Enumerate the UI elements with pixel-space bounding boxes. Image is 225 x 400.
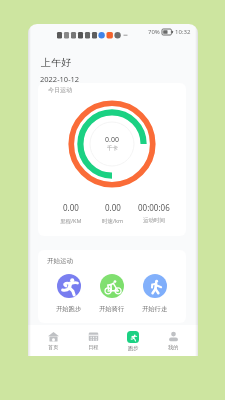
staticText: 千卡 xyxy=(107,145,118,152)
staticText: 2022-10-12 xyxy=(40,74,80,84)
staticText: 跑步 xyxy=(128,345,139,352)
staticText: 开始行走 xyxy=(142,305,168,313)
button[interactable]: 开始行走 xyxy=(133,274,176,313)
staticText: 10:32 xyxy=(175,28,191,36)
button[interactable]: 我的 xyxy=(153,325,193,356)
staticText: 我的 xyxy=(168,344,179,351)
staticText: 开始骑行 xyxy=(99,305,125,313)
staticText: 开始运动 xyxy=(47,257,73,265)
staticText: 日程 xyxy=(88,344,99,351)
staticText: 0.00 xyxy=(105,202,121,213)
staticText: 上午好 xyxy=(41,56,71,69)
button[interactable]: 日程 xyxy=(73,325,113,356)
staticText: 首页 xyxy=(48,344,59,351)
button[interactable]: 跑步 xyxy=(113,325,153,356)
staticText: 开始跑步 xyxy=(56,305,82,313)
staticText: 00:00:06 xyxy=(138,202,170,213)
button[interactable]: 开始骑行 xyxy=(90,274,133,313)
staticText: 里程/KM xyxy=(60,217,82,225)
button[interactable]: 开始跑步 xyxy=(48,274,90,313)
button[interactable]: 首页 xyxy=(33,325,73,356)
staticText: 0.00 xyxy=(105,135,119,145)
staticText: 今日运动 xyxy=(48,86,72,94)
staticText: 运动时间 xyxy=(143,217,165,224)
staticText: 0.00 xyxy=(63,202,79,213)
staticText: 时速/km xyxy=(102,217,124,225)
staticText: 70% xyxy=(148,28,160,36)
